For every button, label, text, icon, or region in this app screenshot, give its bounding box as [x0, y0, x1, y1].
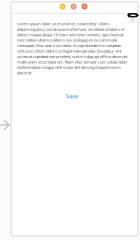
staticText: Lorem ipsum dolor sit et sit amet, conse… — [17, 21, 127, 75]
staticText: Save — [66, 92, 78, 100]
button[interactable]: Save — [17, 75, 127, 100]
button[interactable]: Next page — [0, 119, 10, 131]
